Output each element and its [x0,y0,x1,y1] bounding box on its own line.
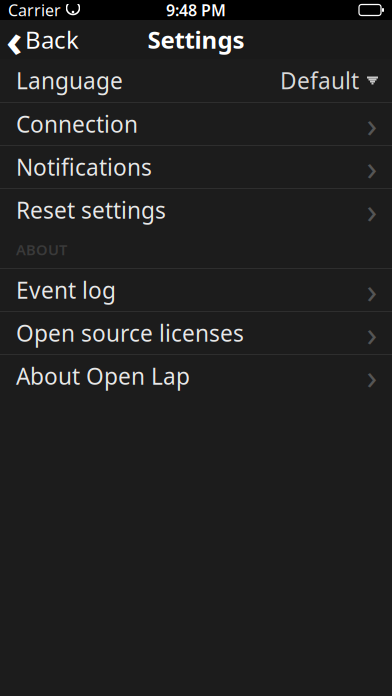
staticText: Back [25,24,79,55]
staticText: 9:48 PM [166,0,226,21]
staticText: Connection [16,109,138,139]
button[interactable]: Language [0,59,392,102]
staticText: About Open Lap [16,361,190,391]
staticText: › [366,144,377,190]
staticText: › [366,101,377,147]
button[interactable]: Reset settings [0,189,392,231]
staticText: › [366,267,377,313]
button[interactable]: Event log [0,269,392,311]
staticText: › [366,353,377,399]
staticText: Open source licenses [16,318,244,348]
button[interactable]: About Open Lap [0,355,392,397]
button[interactable]: ‹ [0,18,79,61]
staticText: ABOUT [16,240,67,259]
staticText: Event log [16,275,116,305]
staticText: Carrier [8,0,61,21]
staticText: › [366,310,377,356]
staticText: ‹ [6,9,23,70]
staticText: Settings [147,24,244,55]
staticText: Default [280,65,359,95]
staticText: Language [16,65,123,95]
button[interactable]: Connection [0,103,392,145]
staticText: › [366,187,377,233]
staticText: Reset settings [16,195,166,225]
button[interactable]: Open source licenses [0,312,392,354]
button[interactable]: Notifications [0,146,392,188]
staticText: Notifications [16,152,152,182]
